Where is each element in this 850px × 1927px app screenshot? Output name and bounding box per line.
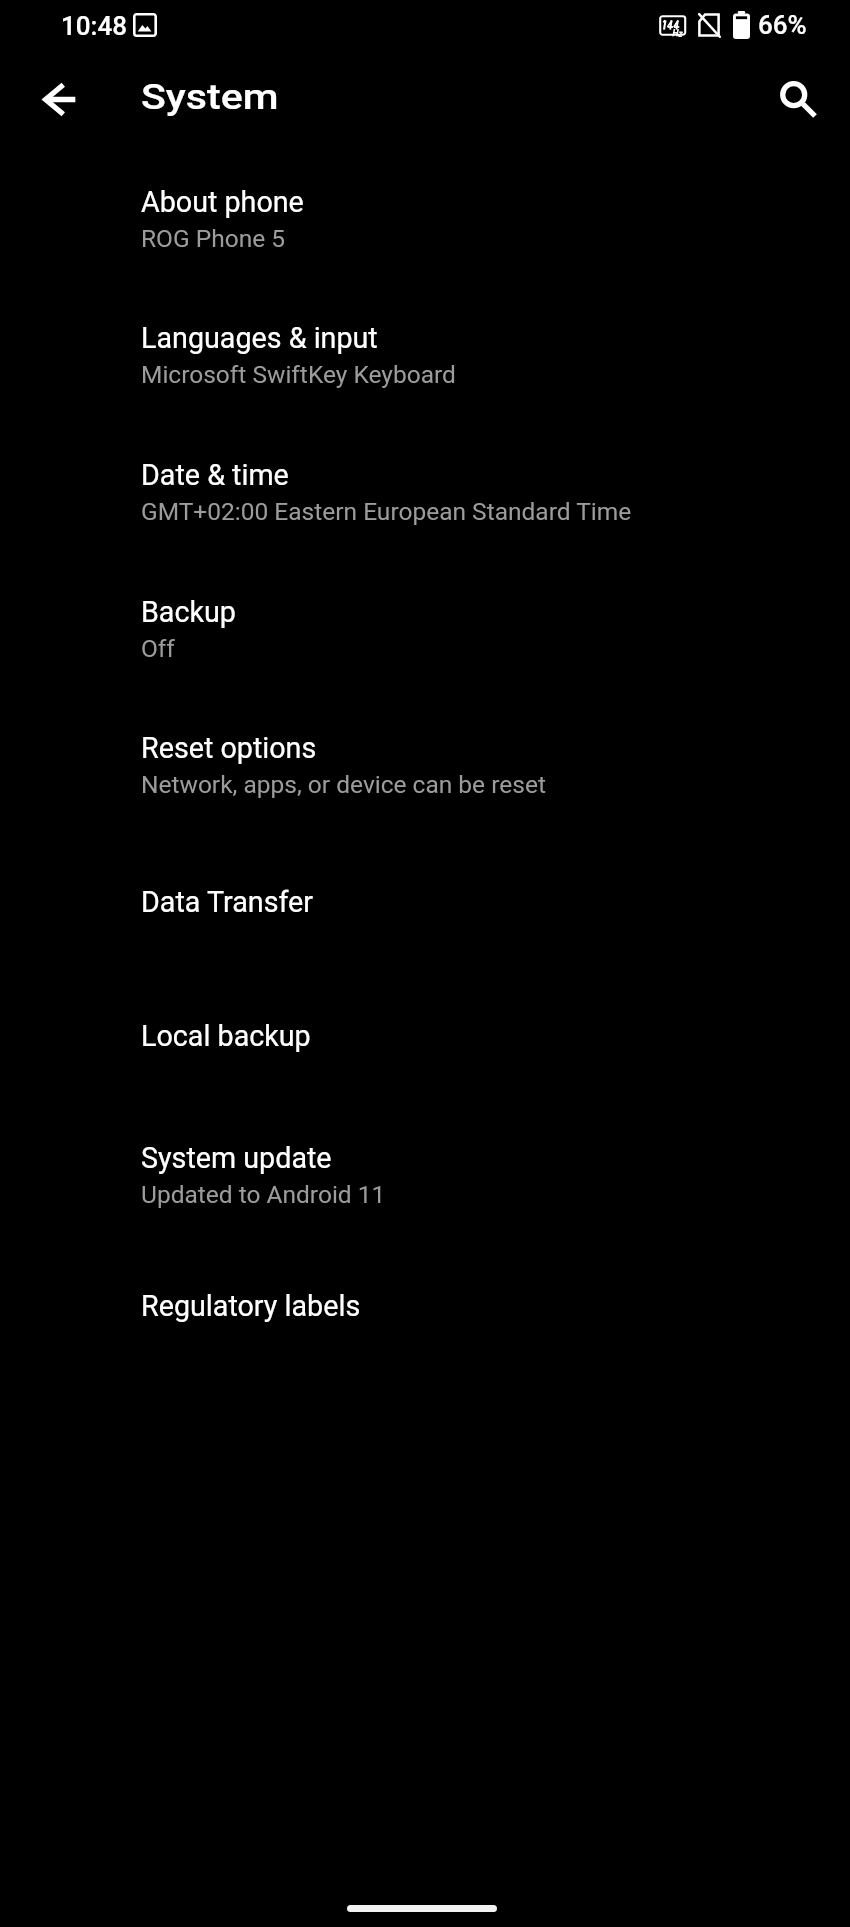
staticText: About phone — [141, 185, 304, 219]
button[interactable]: About phone — [0, 151, 850, 287]
staticText: Network, apps, or device can be reset — [141, 770, 546, 799]
staticText: Backup — [141, 595, 236, 629]
staticText: Local backup — [141, 1019, 311, 1053]
button[interactable]: Reset options — [0, 697, 850, 833]
button[interactable]: Back — [28, 67, 92, 131]
button[interactable]: Regulatory labels — [0, 1238, 850, 1374]
staticText: 10:48 — [61, 11, 128, 41]
button[interactable]: Languages & input — [0, 287, 850, 423]
button[interactable]: Backup — [0, 561, 850, 697]
staticText: Reset options — [141, 731, 317, 765]
staticText: Data Transfer — [141, 885, 314, 919]
staticText: Date & time — [141, 458, 289, 492]
button[interactable]: Local backup — [0, 968, 850, 1104]
staticText: 66% — [758, 10, 807, 40]
button[interactable]: System update — [0, 1107, 850, 1243]
staticText: Microsoft SwiftKey Keyboard — [141, 360, 456, 389]
button[interactable]: Date & time — [0, 424, 850, 560]
staticText: GMT+02:00 Eastern European Standard Time — [141, 497, 632, 526]
staticText: Regulatory labels — [141, 1289, 361, 1323]
staticText: ROG Phone 5 — [141, 224, 286, 253]
staticText: System — [141, 77, 280, 118]
staticText: System update — [141, 1141, 332, 1175]
staticText: Updated to Android 11 — [141, 1180, 386, 1209]
staticText: Off — [141, 634, 175, 663]
staticText: Languages & input — [141, 321, 378, 355]
button[interactable]: Data Transfer — [0, 834, 850, 970]
button[interactable]: Search — [767, 68, 831, 132]
